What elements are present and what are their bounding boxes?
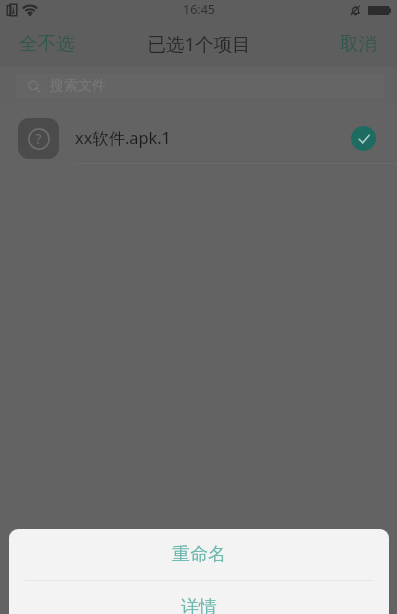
other: Selected [351,126,376,151]
staticText: 取消 [340,32,377,55]
button[interactable]: 取消 [326,24,397,63]
other: Search [28,80,41,93]
button[interactable]: 全不选 [0,24,89,63]
staticText: 搜索文件 [50,77,106,95]
staticText: 16:45 [183,1,215,18]
staticText: 详情 [181,596,217,614]
staticText: xx软件.apk.1 [75,127,171,149]
button[interactable]: 详情 [9,581,389,614]
button[interactable]: ? [0,110,397,166]
staticText: 全不选 [19,32,75,55]
staticText: ? [35,129,42,148]
button[interactable]: 重命名 [9,529,389,580]
staticText: 已选1个项目 [147,31,251,56]
staticText: 重命名 [172,543,226,566]
